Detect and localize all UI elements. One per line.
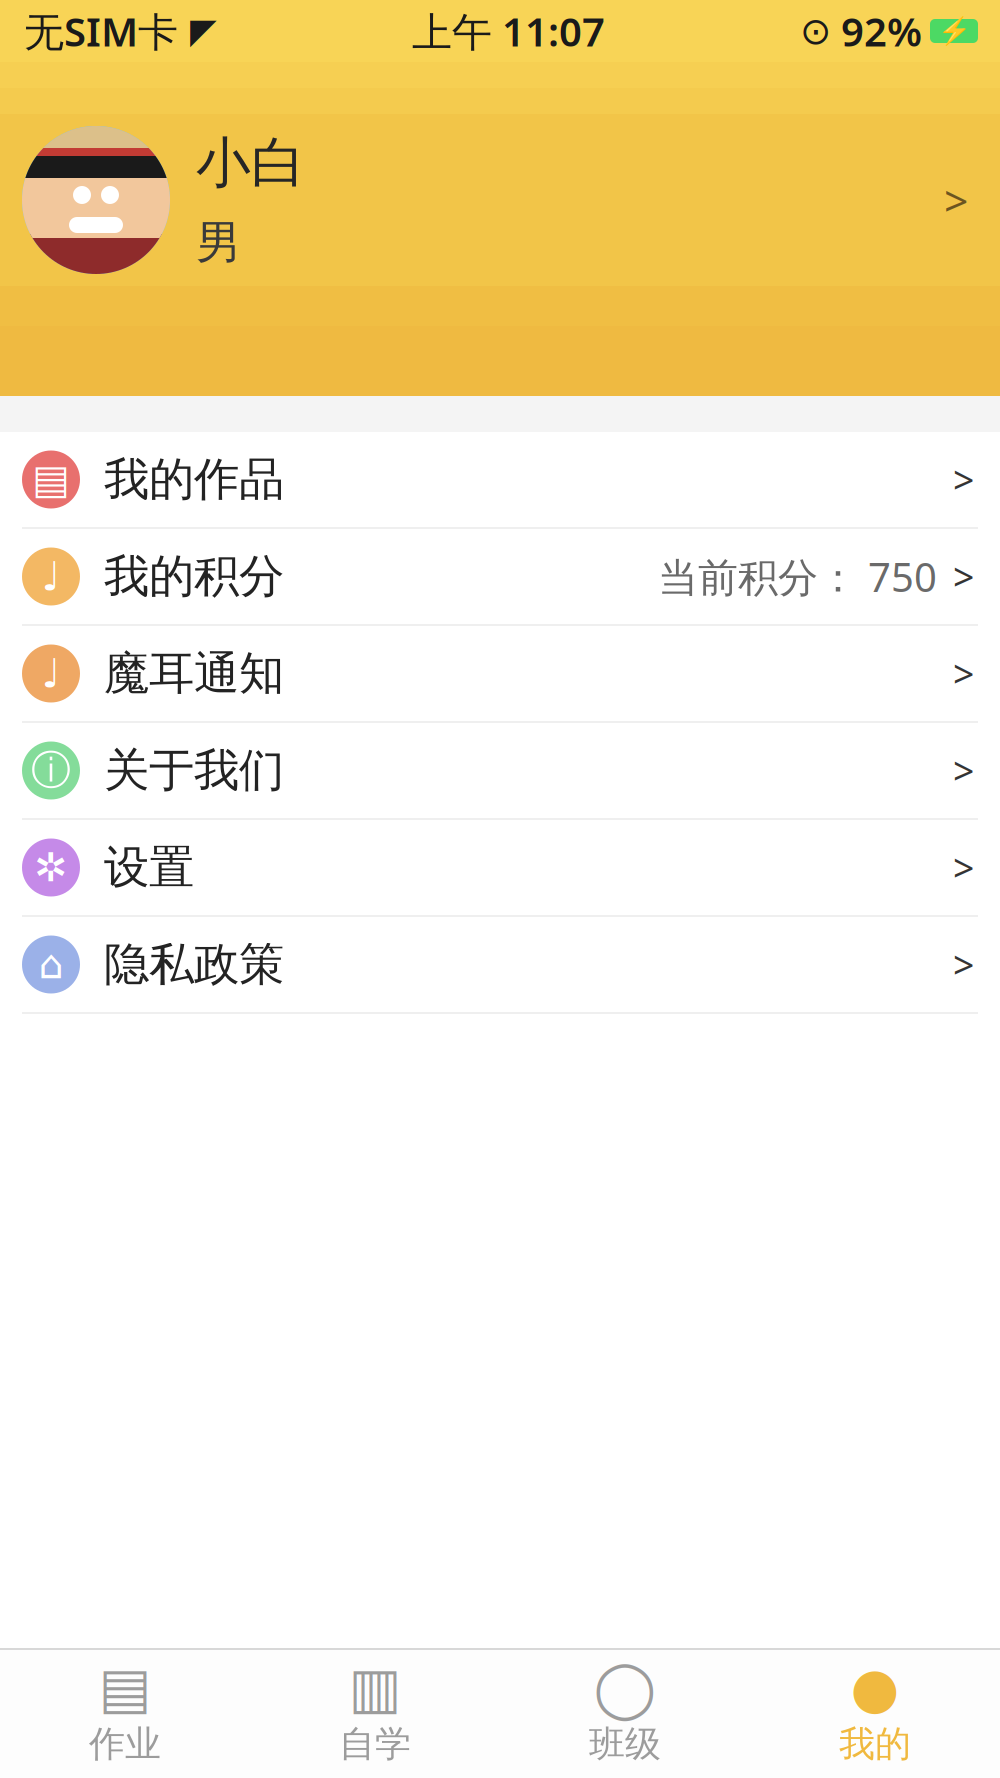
- staticText: ⊙: [800, 10, 831, 52]
- staticText: ♩: [41, 554, 60, 599]
- staticText: 关于我们: [104, 743, 284, 798]
- button[interactable]: 小白: [0, 114, 1000, 286]
- staticText: >: [953, 649, 974, 698]
- button[interactable]: ▤: [0, 1651, 250, 1777]
- staticText: 魔耳通知: [104, 646, 284, 701]
- staticText: ♩: [41, 651, 60, 696]
- button[interactable]: ⓘ: [0, 723, 1000, 818]
- button[interactable]: ◯: [500, 1651, 750, 1777]
- staticText: 上午 11:07: [412, 4, 605, 57]
- staticText: 作业: [89, 1722, 161, 1766]
- staticText: 我的: [839, 1722, 911, 1766]
- staticText: 无SIM卡: [24, 4, 178, 57]
- staticText: ⌂: [38, 942, 63, 987]
- staticText: 男: [196, 215, 241, 270]
- staticText: ▥: [348, 1656, 401, 1720]
- staticText: 隐私政策: [104, 937, 284, 992]
- button[interactable]: ♩: [0, 529, 1000, 624]
- staticText: ●: [850, 1656, 899, 1720]
- staticText: ▤: [32, 457, 70, 502]
- staticText: >: [953, 940, 974, 989]
- staticText: ⚡: [937, 16, 970, 46]
- button[interactable]: ▥: [250, 1651, 500, 1777]
- staticText: >: [953, 552, 974, 601]
- button[interactable]: ♩: [0, 626, 1000, 721]
- button[interactable]: ⌂: [0, 917, 1000, 1012]
- button[interactable]: ✲: [0, 820, 1000, 915]
- staticText: >: [944, 172, 968, 228]
- staticText: 92%: [841, 4, 922, 57]
- staticText: 自学: [339, 1722, 411, 1766]
- staticText: >: [953, 843, 974, 892]
- staticText: 设置: [104, 840, 194, 895]
- staticText: 我的积分: [104, 549, 284, 604]
- staticText: 班级: [589, 1722, 661, 1766]
- staticText: ✲: [34, 845, 68, 890]
- button[interactable]: ▤: [0, 432, 1000, 527]
- staticText: 当前积分： 750: [658, 550, 937, 603]
- staticText: >: [953, 455, 974, 504]
- button[interactable]: ●: [750, 1651, 1000, 1777]
- staticText: ▤: [98, 1656, 151, 1720]
- staticText: 我的作品: [104, 452, 284, 507]
- staticText: ⓘ: [31, 746, 71, 795]
- staticText: 小白: [196, 130, 306, 197]
- staticText: ◤: [190, 11, 217, 51]
- staticText: >: [953, 746, 974, 795]
- staticText: ◯: [593, 1656, 656, 1720]
